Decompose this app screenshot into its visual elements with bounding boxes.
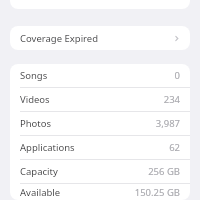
button[interactable]: Coverage Expired (10, 26, 190, 50)
button[interactable]: Videos (10, 88, 190, 111)
staticText: Available (20, 186, 61, 199)
staticText: 3,987 (155, 117, 180, 130)
staticText: Photos (20, 117, 52, 130)
staticText: 0 (174, 69, 180, 82)
button[interactable]: Applications (10, 136, 190, 159)
staticText: Videos (20, 93, 50, 106)
staticText: Capacity (20, 165, 58, 178)
staticText: Coverage Expired (20, 32, 99, 45)
staticText: Applications (20, 141, 75, 154)
staticText: 62 (169, 141, 180, 154)
button[interactable]: Songs (10, 64, 190, 87)
staticText: 234 (163, 93, 180, 106)
staticText: 150.25 GB (134, 186, 180, 199)
staticText: Songs (20, 69, 48, 82)
button[interactable]: Photos (10, 112, 190, 135)
other: Coverage details (173, 35, 180, 42)
staticText: 256 GB (148, 165, 180, 178)
button[interactable]: Available (10, 184, 190, 200)
button[interactable]: Capacity (10, 160, 190, 183)
